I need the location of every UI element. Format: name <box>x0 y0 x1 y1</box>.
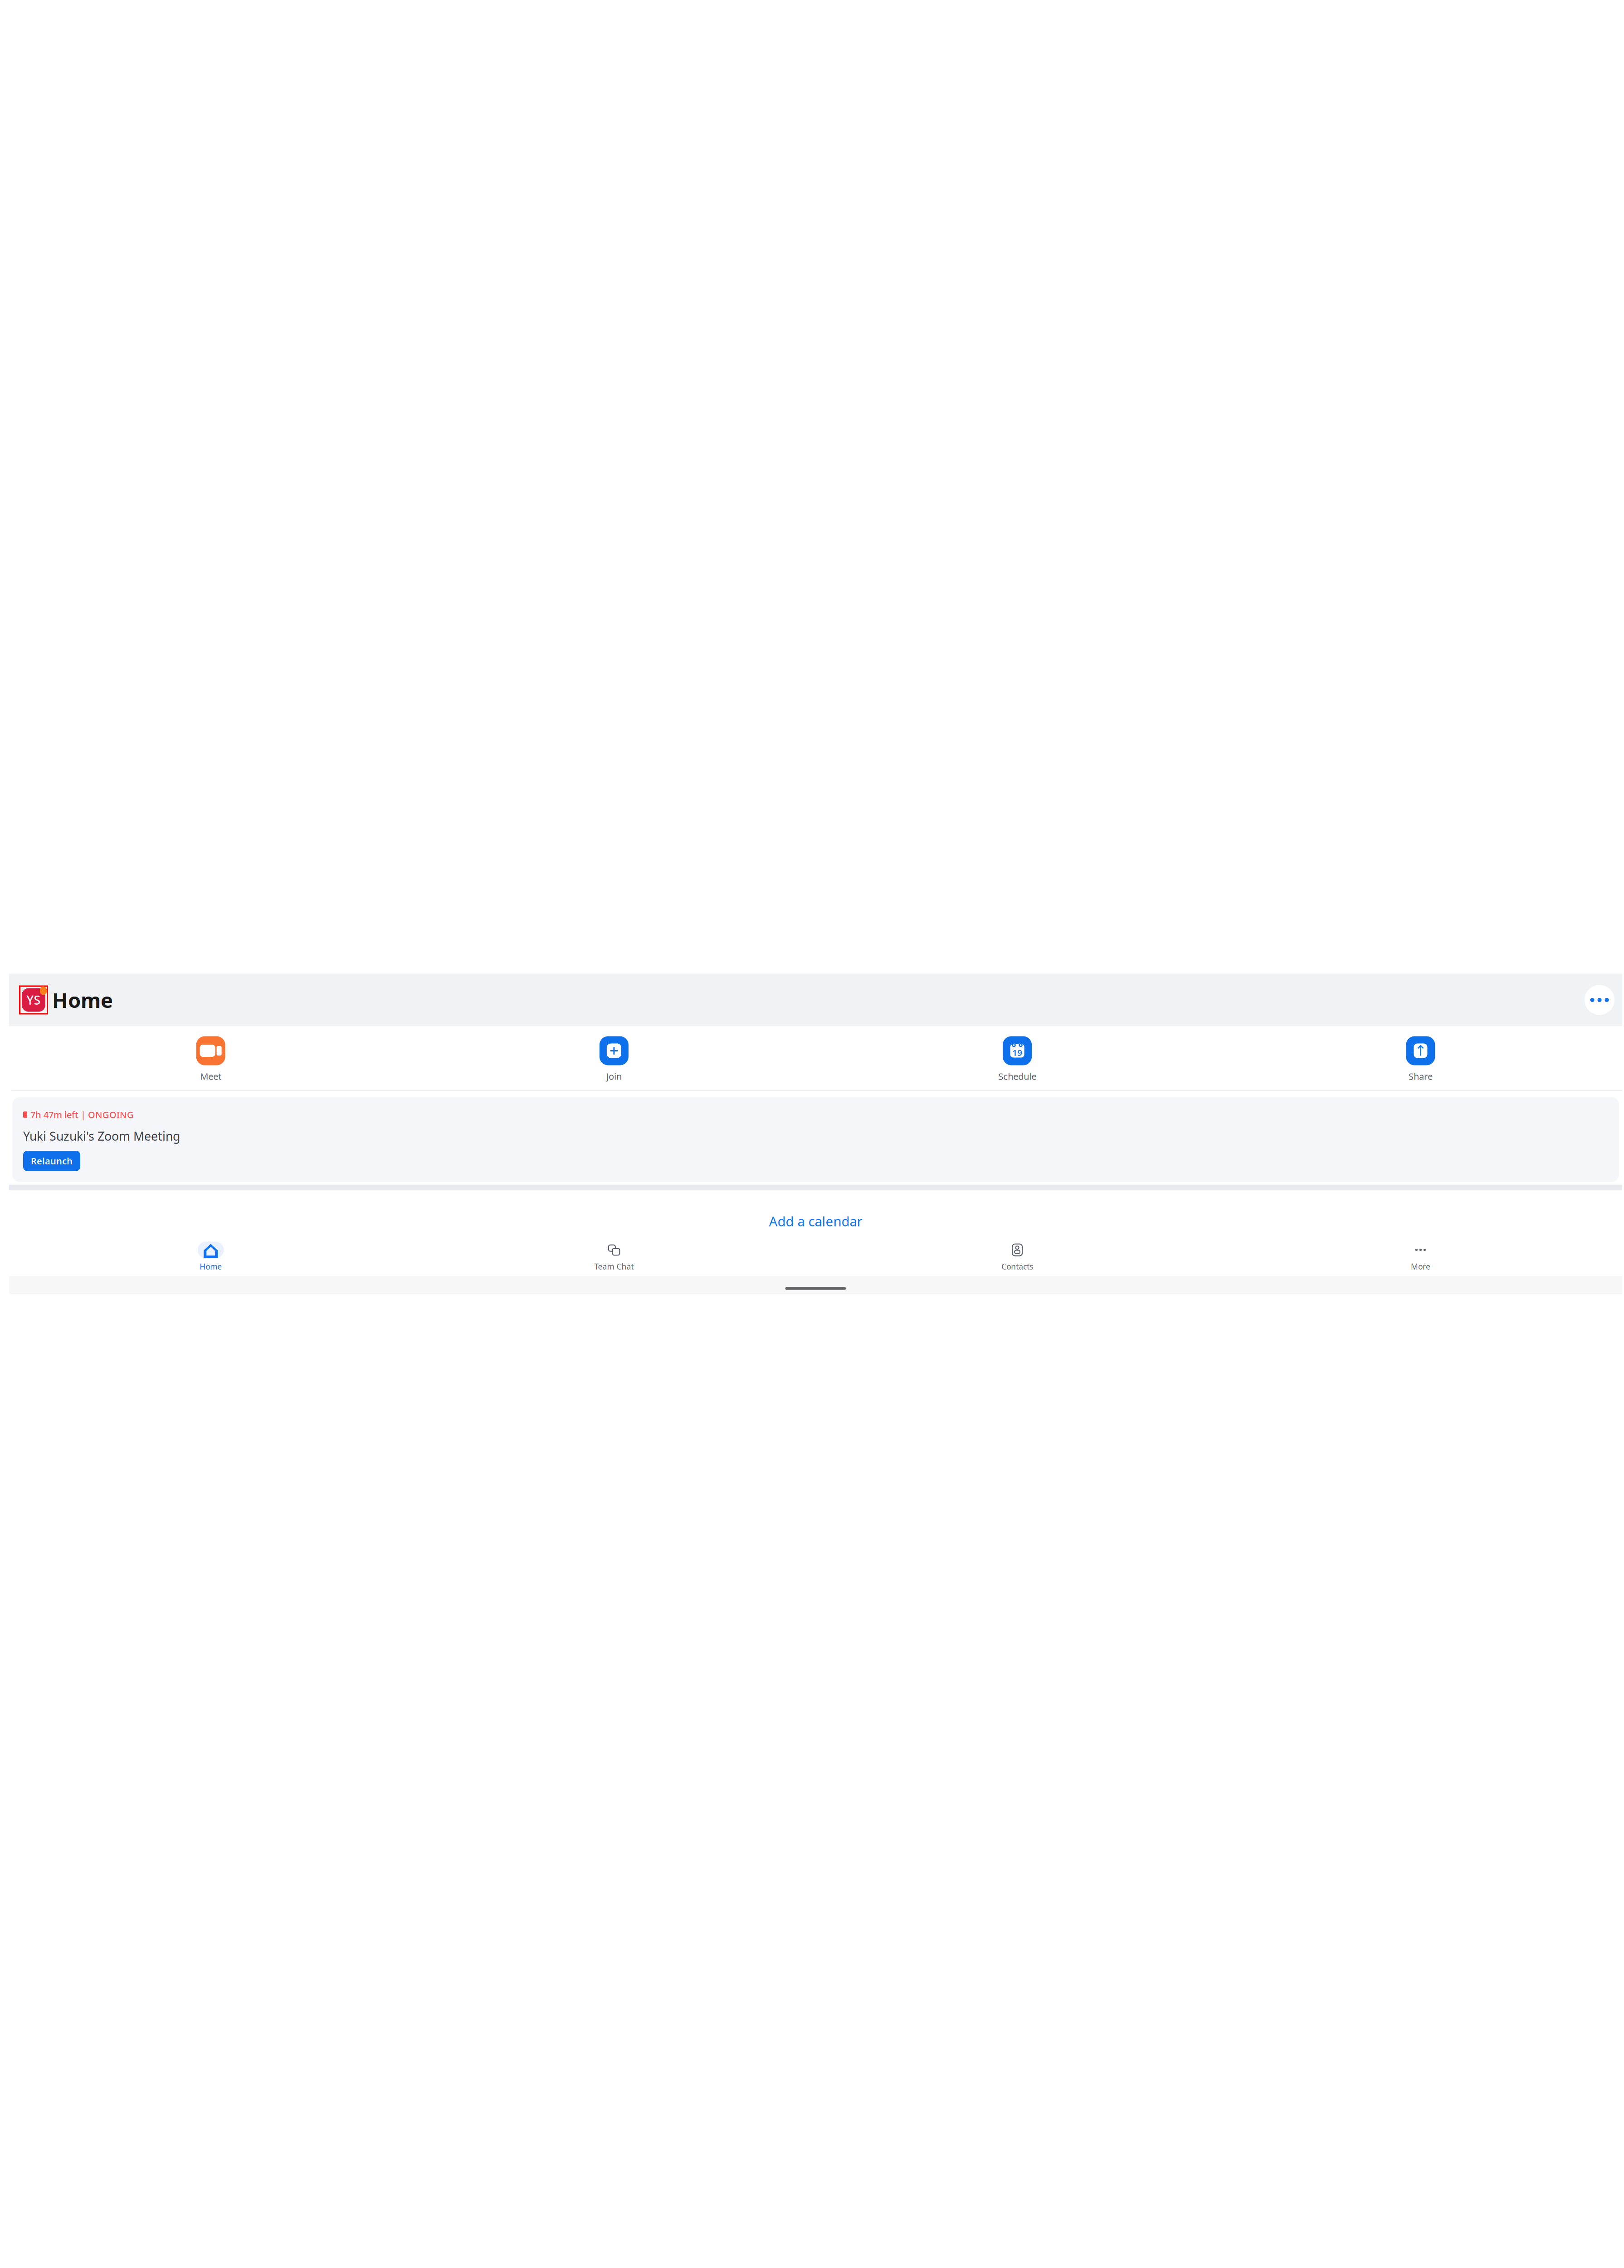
staticText: Add a calendar <box>769 1212 862 1230</box>
staticText: Team Chat <box>594 1261 634 1272</box>
staticText: Contacts <box>1001 1261 1033 1272</box>
staticText: ⌂ <box>202 1236 219 1264</box>
button[interactable]: Meet <box>9 1035 412 1083</box>
button[interactable]: 19 <box>816 1035 1219 1083</box>
button[interactable]: Profile <box>19 985 48 1014</box>
staticText: Join <box>606 1070 622 1082</box>
button[interactable]: Contacts <box>816 1239 1219 1272</box>
button[interactable]: More options <box>1583 984 1616 1016</box>
staticText: Yuki Suzuki's Zoom Meeting <box>23 1128 180 1144</box>
button[interactable]: Join <box>412 1035 816 1083</box>
staticText: YS <box>27 992 41 1008</box>
staticText: Share <box>1409 1070 1433 1082</box>
staticText: Meet <box>200 1070 221 1082</box>
staticText: Relaunch <box>31 1155 73 1167</box>
staticText: More <box>1411 1261 1430 1272</box>
staticText: Home <box>200 1261 222 1272</box>
button[interactable]: More <box>1219 1239 1622 1272</box>
button[interactable]: ⌂ <box>9 1239 412 1272</box>
staticText: 7h 47m left | ONGOING <box>30 1109 134 1121</box>
staticText: Home <box>52 986 113 1014</box>
button[interactable]: 7h 47m left | ONGOING <box>12 1097 1619 1182</box>
staticText: ↑ <box>1414 1043 1427 1059</box>
button[interactable]: Team Chat <box>412 1239 816 1272</box>
staticText: 19 <box>1012 1047 1022 1058</box>
button[interactable]: Add a calendar <box>758 1207 873 1235</box>
staticText: Schedule <box>998 1070 1036 1082</box>
button[interactable]: ↑ <box>1219 1035 1622 1083</box>
